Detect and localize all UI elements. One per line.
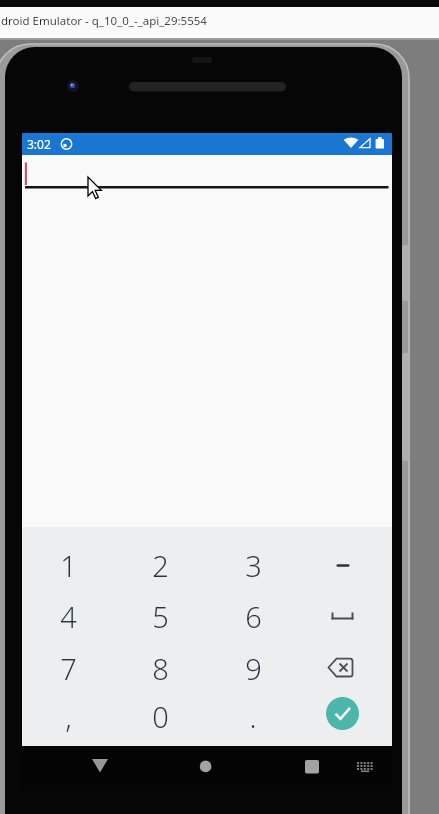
button[interactable]: 9	[207, 642, 299, 694]
button[interactable]	[299, 539, 391, 591]
button[interactable]	[299, 690, 391, 742]
staticText: 7	[60, 649, 77, 688]
staticText: 8	[152, 649, 169, 688]
staticText: 9	[245, 649, 262, 688]
button[interactable]	[299, 642, 391, 694]
button[interactable]: 7	[22, 642, 114, 694]
staticText: 0	[152, 697, 169, 736]
button[interactable]: 8	[114, 642, 206, 694]
staticText: 6	[245, 597, 262, 636]
button[interactable]: 0	[114, 690, 206, 742]
button[interactable]	[299, 591, 391, 642]
button[interactable]	[350, 750, 380, 780]
staticText: 4	[60, 597, 77, 636]
button[interactable]: ,	[22, 690, 114, 742]
button[interactable]: 1	[22, 539, 114, 591]
button[interactable]: .	[207, 690, 299, 742]
staticText: 1	[60, 546, 77, 585]
staticText: ,	[65, 697, 72, 736]
button[interactable]: 6	[207, 591, 299, 642]
button[interactable]	[25, 158, 389, 189]
staticText: .	[249, 697, 257, 736]
button[interactable]	[80, 746, 120, 786]
staticText: droid Emulator - q_10_0_-_api_29:5554	[1, 13, 207, 29]
button[interactable]: 4	[22, 591, 114, 642]
button[interactable]: 5	[114, 591, 206, 642]
button[interactable]: 2	[114, 539, 206, 591]
button[interactable]	[292, 746, 332, 786]
button[interactable]	[186, 746, 226, 786]
button[interactable]: 3	[207, 539, 299, 591]
button[interactable]	[326, 697, 359, 730]
staticText: 3	[245, 546, 262, 585]
staticText: 5	[152, 597, 169, 636]
staticText: 2	[152, 546, 169, 585]
staticText: 3:02	[27, 136, 51, 152]
